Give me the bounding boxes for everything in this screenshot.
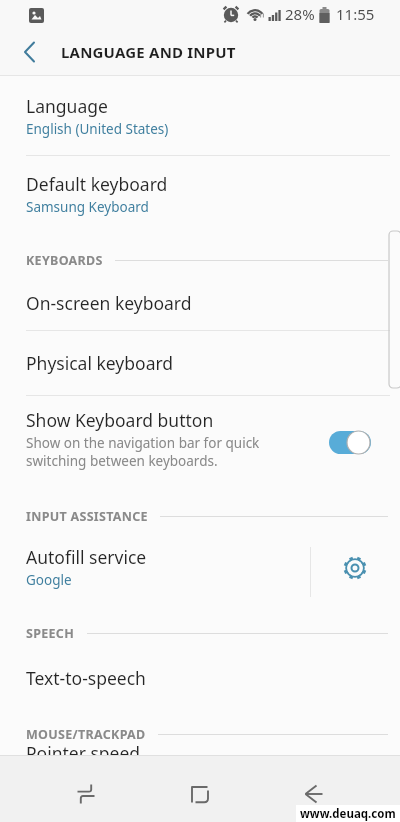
staticText: Google (26, 571, 72, 589)
staticText: LANGUAGE AND INPUT (61, 42, 236, 62)
staticText: SPEECH (26, 625, 75, 642)
staticText: 28% (285, 4, 315, 24)
button[interactable]: LANGUAGE AND INPUT (0, 28, 236, 76)
staticText: On-screen keyboard (26, 291, 192, 315)
button[interactable] (58, 766, 114, 822)
button[interactable]: Text-to-speech (0, 666, 400, 698)
staticText: Autofill service (26, 545, 147, 569)
staticText: 11:55 (336, 4, 375, 24)
button[interactable] (333, 546, 377, 590)
staticText: www.deuaq.com (300, 806, 396, 822)
button[interactable]: On-screen keyboard (0, 291, 400, 323)
staticText: MOUSE/TRACKPAD (26, 726, 146, 743)
button[interactable]: Show Keyboard button (0, 404, 400, 480)
staticText: Physical keyboard (26, 351, 174, 375)
staticText: Default keyboard (26, 172, 168, 196)
staticText: KEYBOARDS (26, 252, 103, 269)
staticText: Samsung Keyboard (26, 198, 149, 216)
staticText: Text-to-speech (26, 666, 146, 690)
button[interactable] (329, 431, 371, 454)
staticText: English (United States) (26, 120, 169, 138)
button[interactable]: Autofill service (26, 545, 147, 589)
button[interactable]: Language (0, 90, 400, 144)
button[interactable]: Physical keyboard (0, 351, 400, 383)
staticText: Language (26, 94, 108, 118)
staticText: Show on the navigation bar for quick swi… (26, 434, 260, 470)
staticText: INPUT ASSISTANCE (26, 508, 148, 525)
button[interactable]: Default keyboard (0, 168, 400, 222)
staticText: Pointer speed (26, 741, 141, 765)
button[interactable] (172, 766, 228, 822)
button[interactable] (286, 766, 342, 822)
staticText: Show Keyboard button (26, 408, 214, 432)
